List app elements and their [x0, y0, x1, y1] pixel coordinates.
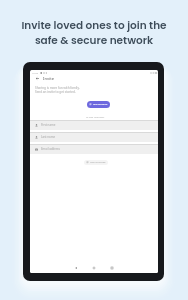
staticText: Email address — [41, 147, 60, 151]
staticText: First name — [41, 123, 56, 127]
button[interactable]: Back — [35, 76, 40, 81]
staticText: ADD CONTACT — [93, 103, 108, 106]
button[interactable]: Recents — [108, 264, 116, 272]
button[interactable]: Back — [72, 264, 80, 272]
button[interactable]: First name — [30, 120, 158, 130]
button[interactable]: ADD CONTACT — [87, 101, 110, 108]
staticText: Invite — [43, 76, 55, 82]
staticText: or add manually — [86, 115, 105, 118]
button[interactable]: Email address — [30, 144, 158, 154]
staticText: Last name — [41, 135, 56, 139]
staticText: 10:05 — [32, 71, 39, 74]
staticText: Invite loved ones to join the safe & sec… — [21, 18, 167, 48]
button[interactable]: Home — [90, 264, 98, 272]
staticText: Sharing is more fun with family. Send an… — [35, 86, 80, 93]
button[interactable]: Last name — [30, 132, 158, 142]
staticText: ADD ANOTHER — [90, 161, 106, 164]
button[interactable]: ADD ANOTHER — [84, 160, 108, 165]
